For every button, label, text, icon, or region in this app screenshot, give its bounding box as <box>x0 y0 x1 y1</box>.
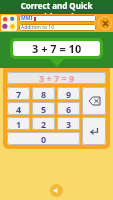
button[interactable]: 7 <box>7 87 30 100</box>
button[interactable]: 8 <box>32 87 55 100</box>
staticText: 3 + 7 = 10 <box>32 41 82 56</box>
button[interactable]: Sound <box>50 184 63 197</box>
button[interactable]: 9 <box>57 87 80 100</box>
button[interactable]: 2 <box>32 117 55 130</box>
staticText: 3 + 7 = 9 <box>39 72 75 84</box>
button[interactable]: 5 <box>32 102 55 115</box>
button[interactable]: Settings <box>98 16 112 30</box>
button[interactable]: 4 <box>7 102 30 115</box>
staticText: 0 <box>41 133 47 145</box>
button[interactable]: 6 <box>57 102 80 115</box>
staticText: 8 <box>41 88 47 100</box>
staticText: 3 <box>66 118 72 130</box>
button[interactable]: Enter <box>82 117 106 145</box>
staticText: MMI <box>21 15 33 22</box>
button[interactable]: MMI <box>19 15 96 22</box>
staticText: 5 <box>41 103 47 115</box>
staticText: Addition to 10 <box>21 24 54 31</box>
button[interactable]: Profile <box>1 15 17 31</box>
button[interactable]: 0 <box>7 132 80 145</box>
staticText: 6 <box>66 103 72 115</box>
staticText: Correct and Quick Arithmetic <box>0 0 113 14</box>
staticText: 1 <box>16 118 22 130</box>
button[interactable]: 3 <box>57 117 80 130</box>
staticText: 2 <box>41 118 47 130</box>
staticText: 4 <box>16 103 22 115</box>
staticText: 9 <box>66 88 72 100</box>
button[interactable]: Backspace <box>82 87 106 115</box>
staticText: 7 <box>16 88 22 100</box>
button[interactable]: Addition to 10 <box>19 24 96 31</box>
button[interactable]: 1 <box>7 117 30 130</box>
